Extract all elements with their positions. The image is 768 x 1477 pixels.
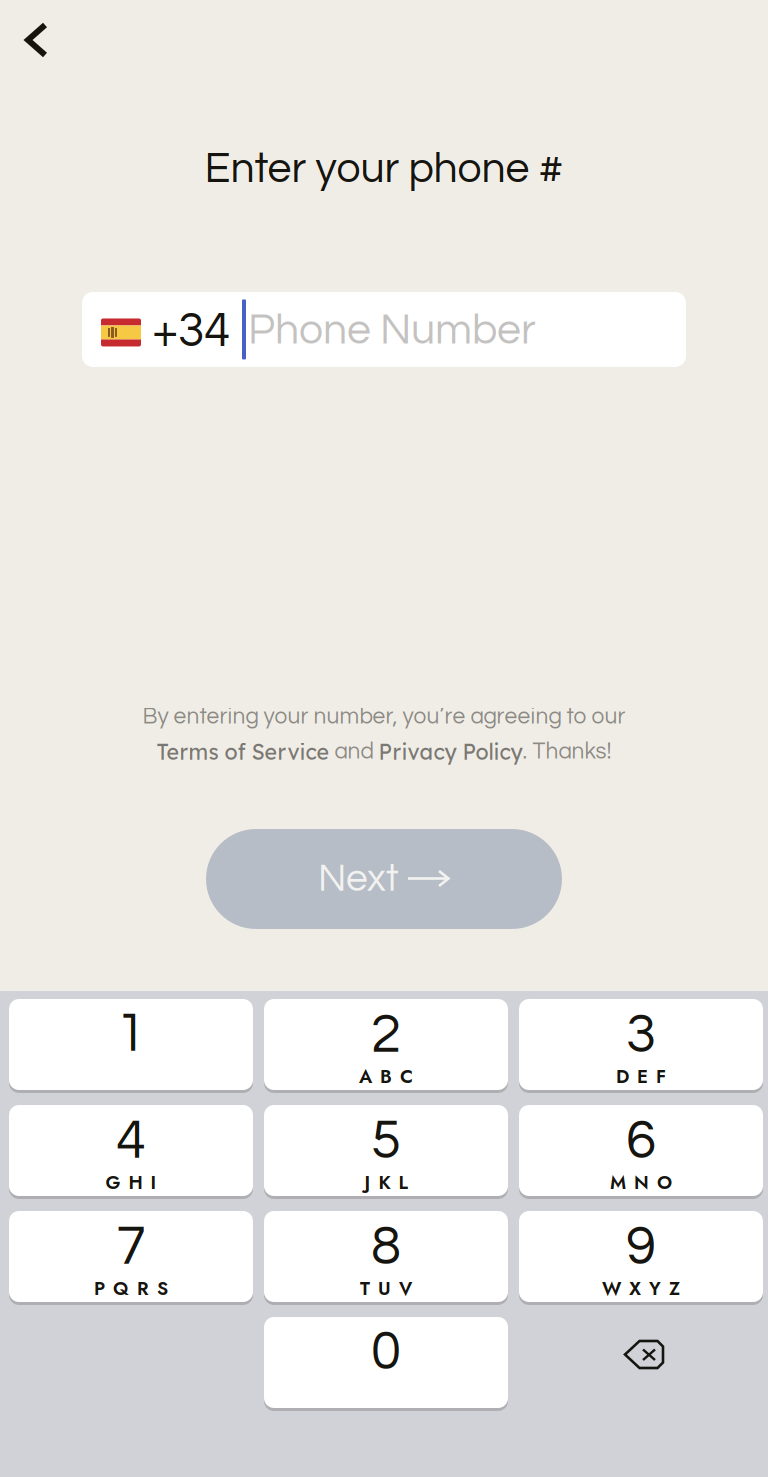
staticText: 5 [371,1113,401,1169]
staticText: Next [318,859,399,899]
staticText: 7 [116,1219,146,1275]
staticText: D E F [616,1063,666,1090]
button[interactable]: 9 [519,1212,763,1303]
staticText: J K L [364,1169,407,1196]
staticText: Enter your phone # [204,147,563,191]
staticText: By entering your number, you’re agreeing… [142,705,625,728]
staticText: A B C [359,1063,413,1090]
button[interactable]: 0 [264,1318,508,1409]
staticText: 8 [371,1219,401,1275]
button[interactable]: 3 [519,1000,763,1091]
staticText: Terms of Service [156,738,329,765]
button[interactable]: 6 [519,1106,763,1197]
button[interactable]: 8 [264,1212,508,1303]
staticText: 2 [371,1007,401,1063]
staticText: T U V [360,1275,412,1302]
button[interactable]: +34 [82,292,686,367]
button[interactable]: 7 [9,1212,253,1303]
button[interactable]: 4 [9,1106,253,1197]
staticText: P Q R S [94,1275,168,1302]
staticText: 9 [626,1219,656,1275]
staticText: M N O [610,1169,672,1196]
button[interactable]: 2 [264,1000,508,1091]
staticText: 0 [371,1324,401,1380]
button[interactable]: 1 [9,1000,253,1091]
staticText: 4 [116,1113,146,1169]
staticText: Privacy Policy [378,738,522,765]
staticText: +34 [152,307,230,356]
staticText: 3 [626,1007,656,1063]
button[interactable]: Delete [519,1318,763,1409]
button[interactable]: 5 [264,1106,508,1197]
staticText: . Thanks! [522,740,611,763]
button[interactable]: Next [206,829,562,929]
staticText: G H I [105,1169,156,1196]
staticText: 6 [626,1113,656,1169]
staticText: 1 [116,1006,146,1062]
staticText: W X Y Z [602,1275,680,1302]
button[interactable]: Back [0,0,69,80]
staticText: and [329,740,378,763]
staticText: Phone Number [248,308,536,352]
